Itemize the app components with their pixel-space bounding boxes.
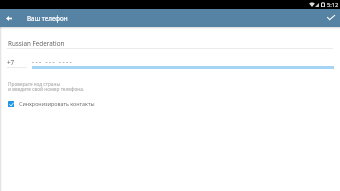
button[interactable]: Синхронизировать контакты xyxy=(0,98,340,109)
staticText: Russian Federation xyxy=(8,39,65,48)
staticText: 5:12 xyxy=(327,1,339,9)
staticText: Ваш телефон xyxy=(27,14,68,23)
staticText: Проверьте код страны и введите свой номе… xyxy=(8,81,85,93)
button[interactable]: Back xyxy=(0,9,18,27)
staticText: +7 xyxy=(7,58,15,67)
button[interactable]: Done xyxy=(322,9,340,27)
staticText: Синхронизировать контакты xyxy=(19,100,95,107)
staticText: --- --- ---- xyxy=(32,57,73,66)
